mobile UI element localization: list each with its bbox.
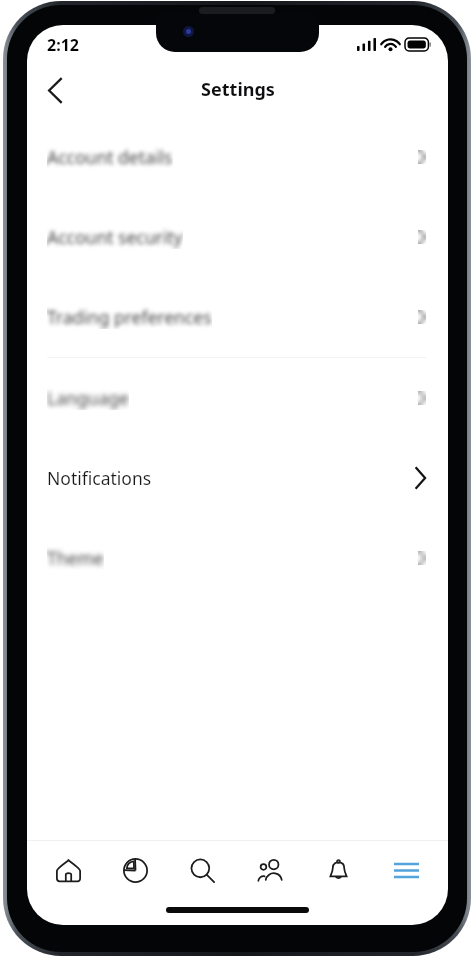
- button[interactable]: Menu: [372, 841, 440, 899]
- button[interactable]: Trading preferences: [27, 277, 448, 357]
- staticText: Notifications: [47, 466, 152, 490]
- button[interactable]: Portfolio: [102, 841, 169, 899]
- staticText: Account details: [47, 145, 173, 169]
- button[interactable]: Account security: [27, 197, 448, 277]
- staticText: Theme: [47, 546, 104, 570]
- button[interactable]: Notifications: [27, 438, 448, 518]
- button[interactable]: Account details: [27, 117, 448, 197]
- staticText: Account security: [47, 225, 183, 249]
- button[interactable]: Alerts: [304, 841, 372, 899]
- staticText: Settings: [201, 77, 275, 102]
- button[interactable]: Social: [236, 841, 304, 899]
- button[interactable]: Home: [35, 841, 102, 899]
- button[interactable]: Theme: [27, 518, 448, 598]
- button[interactable]: Back: [33, 68, 77, 112]
- button[interactable]: Search: [169, 841, 236, 899]
- button[interactable]: Language: [27, 358, 448, 438]
- staticText: Language: [47, 386, 129, 410]
- staticText: Trading preferences: [47, 305, 212, 329]
- staticText: 2:12: [47, 34, 79, 56]
